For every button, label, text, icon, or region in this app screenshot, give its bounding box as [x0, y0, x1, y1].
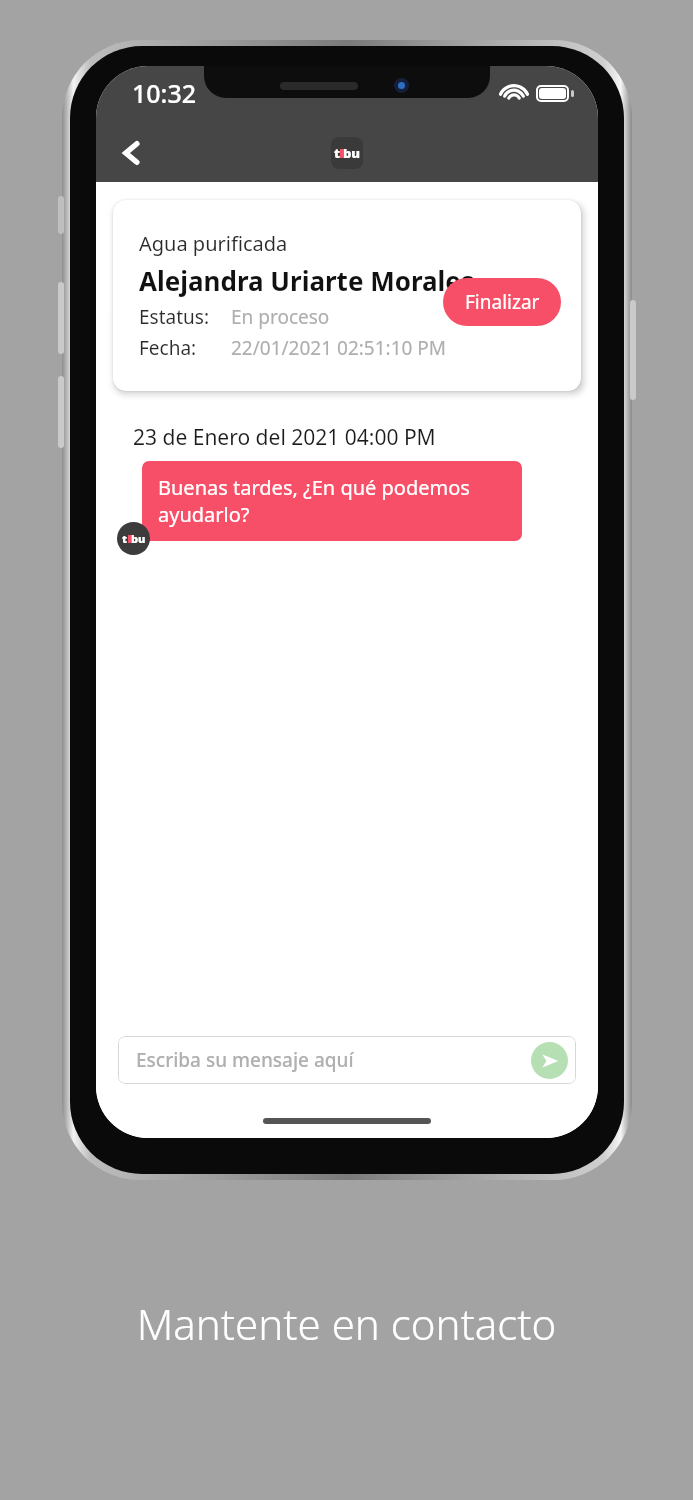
staticText: 22/01/2021 02:51:10 PM	[231, 335, 447, 361]
button[interactable]: Buenas tardes, ¿En qué podemos ayudarlo?	[142, 461, 522, 541]
staticText: t	[122, 531, 128, 546]
staticText: Estatus:	[139, 304, 231, 330]
staticText: bu	[131, 531, 146, 546]
staticText: En proceso	[231, 304, 330, 330]
staticText: Finalizar	[465, 289, 540, 315]
staticText: Escriba su mensaje aquí	[136, 1047, 354, 1073]
staticText: 10:32	[132, 76, 197, 110]
staticText: Mantente en contacto	[0, 1295, 693, 1352]
staticText: Buenas tardes, ¿En qué podemos ayudarlo?	[158, 474, 506, 528]
staticText: bu	[343, 144, 361, 162]
button[interactable]: Back	[108, 129, 156, 177]
staticText: Alejandra Uriarte Morales	[139, 263, 474, 298]
staticText: t	[334, 144, 340, 162]
staticText: Agua purificada	[139, 230, 288, 257]
staticText: 23 de Enero del 2021 04:00 PM	[133, 423, 436, 452]
button[interactable]: Send	[531, 1042, 568, 1079]
staticText: Fecha:	[139, 335, 231, 361]
button[interactable]: Agua purificada	[113, 200, 581, 391]
button[interactable]: Finalizar	[443, 278, 561, 326]
button[interactable]: Escriba su mensaje aquí	[118, 1036, 576, 1084]
